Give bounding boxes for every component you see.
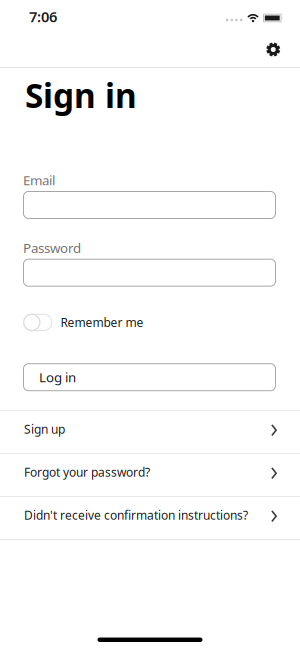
button[interactable]: Remember me <box>23 314 143 331</box>
staticText: Sign in <box>25 73 137 117</box>
staticText: Email <box>23 171 55 189</box>
staticText: Didn't receive confirmation instructions… <box>24 507 248 523</box>
staticText: Password <box>23 239 81 257</box>
button[interactable]: Log in <box>23 363 276 391</box>
staticText: Log in <box>39 368 76 386</box>
staticText: Sign up <box>24 421 65 437</box>
button[interactable] <box>265 38 300 57</box>
staticText: 7:06 <box>29 7 57 26</box>
button[interactable]: Sign up <box>0 411 300 454</box>
staticText: Forgot your password? <box>24 464 150 480</box>
button[interactable]: Didn't receive confirmation instructions… <box>0 497 300 540</box>
button[interactable]: Forgot your password? <box>0 454 300 497</box>
staticText: Remember me <box>60 314 143 330</box>
